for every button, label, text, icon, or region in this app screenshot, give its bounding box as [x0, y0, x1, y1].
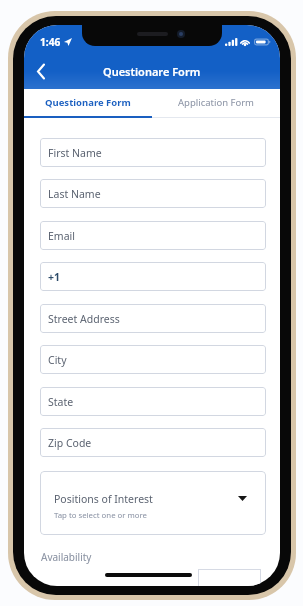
staticText: Application Form — [178, 96, 255, 109]
staticText: First Name — [48, 146, 102, 160]
button[interactable]: Email — [40, 221, 266, 250]
button[interactable]: State — [40, 387, 266, 416]
staticText: +1 — [48, 270, 61, 284]
staticText: Street Address — [48, 312, 120, 326]
button[interactable]: First Name — [40, 138, 266, 167]
staticText: State — [48, 395, 74, 409]
button[interactable]: Zip Code — [40, 428, 266, 457]
button[interactable] — [198, 569, 261, 586]
button[interactable]: Positions of Interest — [40, 471, 266, 535]
staticText: Availability — [41, 550, 92, 564]
staticText: City — [48, 353, 67, 367]
button[interactable]: Application Form — [152, 88, 280, 117]
staticText: Questionare Form — [45, 96, 131, 109]
staticText: 1:46 — [40, 35, 61, 49]
staticText: Questionare Form — [103, 64, 201, 79]
button[interactable]: City — [40, 345, 266, 374]
staticText: Email — [48, 229, 75, 243]
staticText: Positions of Interest — [54, 492, 153, 506]
staticText: Zip Code — [48, 436, 92, 450]
button[interactable]: Street Address — [40, 304, 266, 333]
staticText: Last Name — [48, 187, 101, 201]
button[interactable]: Last Name — [40, 179, 266, 208]
button[interactable]: +1 — [40, 262, 266, 291]
button[interactable]: Questionare Form — [24, 88, 152, 117]
staticText: Tap to select one or more — [54, 510, 147, 521]
button[interactable]: Back — [27, 57, 55, 85]
